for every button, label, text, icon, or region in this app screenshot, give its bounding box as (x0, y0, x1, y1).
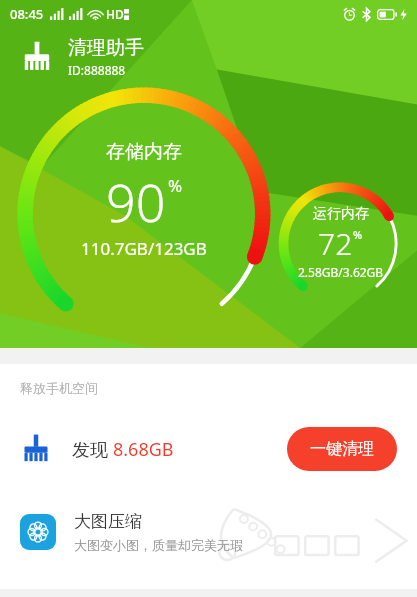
staticText: 发现 (72, 437, 113, 462)
staticText: % (168, 174, 183, 197)
staticText: % (353, 227, 363, 242)
staticText: 8.68GB (113, 437, 174, 462)
staticText: 08:45 (10, 5, 44, 23)
button[interactable]: 大图压缩 (0, 496, 417, 568)
staticText: 清理助手 (68, 36, 144, 60)
staticText: 72 (318, 223, 353, 264)
staticText: 90 (106, 166, 166, 237)
staticText: 一键清理 (310, 439, 374, 459)
button[interactable]: 清理助手 (20, 36, 144, 78)
staticText: 110.7GB/123GB (81, 237, 207, 260)
staticText: 释放手机空间 (20, 380, 98, 396)
staticText: 大图变小图，质量却完美无瑕 (74, 537, 243, 553)
staticText: ID:888888 (68, 62, 126, 78)
staticText: 运行内存 (313, 205, 369, 223)
button[interactable]: 一键清理 (287, 427, 397, 471)
staticText: 大图压缩 (74, 511, 142, 532)
staticText: 2.58GB/3.62GB (298, 264, 384, 280)
staticText: HD (106, 6, 124, 22)
button[interactable]: 发现 (0, 418, 417, 480)
staticText: 存储内存 (106, 140, 182, 164)
